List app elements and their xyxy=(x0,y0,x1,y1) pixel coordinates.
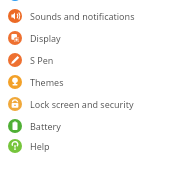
staticText: Battery xyxy=(30,120,61,132)
other: Display xyxy=(8,31,22,45)
button[interactable]: Help xyxy=(0,137,172,155)
other: Help xyxy=(8,139,22,153)
staticText: Help xyxy=(30,140,50,152)
staticText: S Pen xyxy=(30,54,54,66)
other: Themes xyxy=(8,75,22,89)
other: Lock screen and security xyxy=(8,97,22,111)
button[interactable]: S Pen xyxy=(0,49,172,71)
other: Wi-Fi xyxy=(8,0,22,1)
staticText: Sounds and notifications xyxy=(30,10,135,22)
staticText: Themes xyxy=(30,76,64,88)
button[interactable]: Sounds and notifications xyxy=(0,5,172,27)
button[interactable]: Battery xyxy=(0,115,172,137)
other: Sounds and notifications xyxy=(8,9,22,23)
other: Battery xyxy=(8,119,22,133)
button[interactable]: Themes xyxy=(0,71,172,93)
staticText: Display xyxy=(30,32,61,44)
button[interactable]: Display xyxy=(0,27,172,49)
button[interactable]: Lock screen and security xyxy=(0,93,172,115)
staticText: Lock screen and security xyxy=(30,98,134,110)
button[interactable]: Wi-Fi xyxy=(0,0,172,5)
other: S Pen xyxy=(8,53,22,67)
